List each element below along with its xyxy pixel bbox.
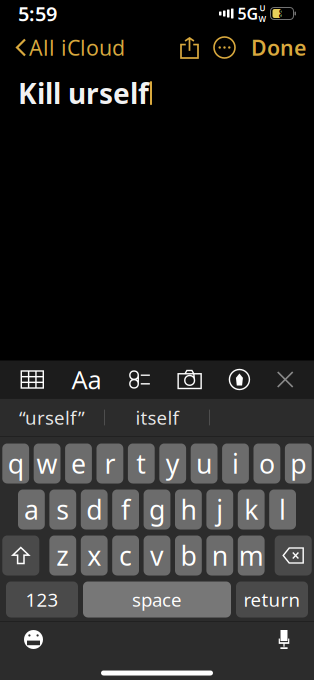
- button[interactable]: n: [206, 535, 233, 575]
- button[interactable]: Delete: [275, 535, 312, 575]
- button[interactable]: d: [81, 489, 108, 529]
- staticText: o: [259, 446, 275, 481]
- button[interactable]: Emoji: [14, 620, 53, 659]
- button[interactable]: r: [96, 443, 123, 483]
- staticText: space: [132, 587, 182, 612]
- button[interactable]: v: [144, 535, 170, 575]
- staticText: All iCloud: [29, 33, 125, 62]
- button[interactable]: a: [18, 489, 45, 529]
- button[interactable]: u: [191, 443, 217, 483]
- staticText: U: [259, 3, 265, 13]
- staticText: i: [232, 446, 239, 481]
- button[interactable]: z: [49, 535, 76, 575]
- button[interactable]: j: [206, 489, 233, 529]
- staticText: 5G: [237, 3, 258, 24]
- staticText: x: [87, 538, 101, 573]
- button[interactable]: e: [65, 443, 92, 483]
- staticText: return: [243, 587, 300, 612]
- button[interactable]: g: [144, 489, 170, 529]
- staticText: u: [196, 446, 212, 481]
- button[interactable]: Table: [14, 364, 50, 395]
- staticText: 123: [25, 587, 58, 612]
- button[interactable]: y: [159, 443, 186, 483]
- staticText: t: [136, 446, 146, 481]
- button[interactable]: o: [253, 443, 280, 483]
- staticText: c: [119, 538, 132, 573]
- button[interactable]: “urself”: [0, 398, 104, 436]
- staticText: n: [212, 538, 228, 573]
- button[interactable]: Markup: [222, 362, 256, 396]
- button[interactable]: Close: [271, 365, 300, 394]
- staticText: Aa: [72, 363, 102, 396]
- button[interactable]: return: [236, 581, 308, 617]
- button[interactable]: l: [269, 489, 296, 529]
- button[interactable]: x: [81, 535, 108, 575]
- button[interactable]: s: [49, 489, 76, 529]
- staticText: g: [149, 492, 165, 527]
- staticText: m: [239, 538, 264, 573]
- button[interactable]: Share: [173, 29, 206, 66]
- button[interactable]: h: [175, 489, 202, 529]
- staticText: itself: [135, 405, 178, 430]
- button[interactable]: space: [83, 581, 231, 617]
- staticText: p: [290, 446, 306, 481]
- staticText: h: [180, 492, 196, 527]
- staticText: s: [56, 492, 69, 527]
- staticText: l: [279, 492, 286, 527]
- staticText: k: [244, 492, 258, 527]
- button[interactable]: Done: [243, 27, 306, 68]
- button[interactable]: Format: [65, 356, 109, 403]
- button[interactable]: p: [285, 443, 312, 483]
- button[interactable]: i: [222, 443, 249, 483]
- button[interactable]: q: [2, 443, 29, 483]
- button[interactable]: All iCloud: [8, 27, 133, 68]
- button[interactable]: w: [34, 443, 60, 483]
- staticText: 8: [278, 5, 285, 21]
- staticText: 5:59: [18, 0, 57, 27]
- button[interactable]: Shift: [2, 535, 39, 575]
- staticText: q: [8, 446, 24, 481]
- staticText: Done: [251, 33, 306, 62]
- staticText: y: [166, 446, 180, 481]
- button[interactable]: More: [206, 29, 243, 66]
- staticText: v: [150, 538, 164, 573]
- staticText: a: [24, 492, 39, 527]
- button[interactable]: f: [112, 489, 139, 529]
- button[interactable]: Camera: [171, 363, 208, 395]
- staticText: d: [86, 492, 102, 527]
- staticText: e: [71, 446, 86, 481]
- button[interactable]: Checklist: [123, 364, 157, 395]
- staticText: W: [258, 13, 266, 24]
- staticText: r: [104, 446, 115, 481]
- button[interactable]: t: [128, 443, 155, 483]
- button[interactable]: itself: [105, 398, 209, 436]
- staticText: “urself”: [19, 405, 85, 430]
- button[interactable]: m: [238, 535, 265, 575]
- button[interactable]: c: [112, 535, 139, 575]
- staticText: Kill urself: [18, 74, 149, 112]
- button[interactable]: k: [238, 489, 265, 529]
- button[interactable]: b: [175, 535, 202, 575]
- staticText: z: [56, 538, 69, 573]
- staticText: b: [180, 538, 196, 573]
- staticText: w: [37, 446, 58, 481]
- staticText: j: [216, 492, 223, 527]
- staticText: f: [121, 492, 130, 527]
- button[interactable]: 123: [6, 581, 78, 617]
- button[interactable]: Dictation: [268, 620, 300, 659]
